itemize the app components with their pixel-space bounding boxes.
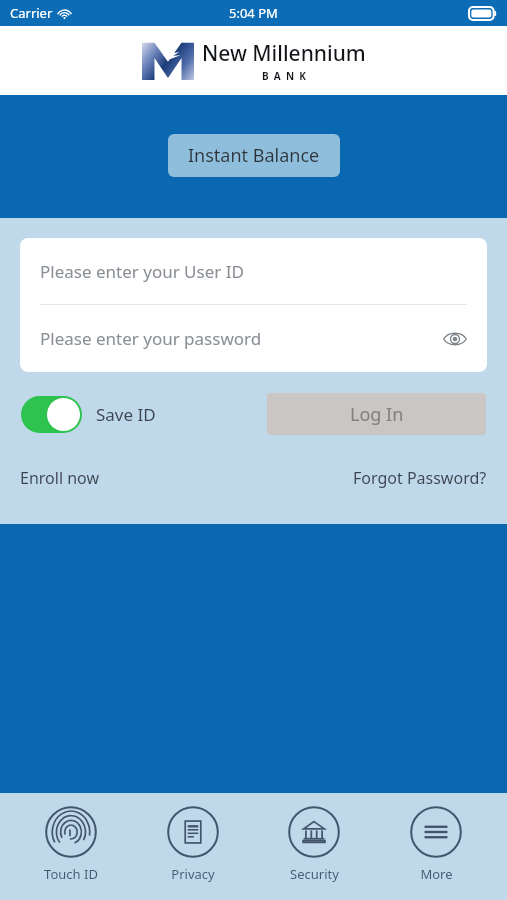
staticText: B A N K bbox=[262, 69, 306, 83]
staticText: Privacy bbox=[171, 865, 215, 883]
staticText: Carrier bbox=[10, 4, 53, 22]
button[interactable]: More bbox=[386, 793, 486, 900]
button[interactable]: Show password bbox=[437, 321, 473, 357]
staticText: Please enter your password bbox=[40, 327, 262, 350]
staticText: Forgot Password? bbox=[353, 467, 487, 489]
staticText: Log In bbox=[350, 402, 404, 427]
button[interactable]: Forgot Password? bbox=[353, 463, 487, 493]
button[interactable]: Security bbox=[264, 793, 364, 900]
staticText: Instant Balance bbox=[188, 143, 320, 168]
staticText: Security bbox=[290, 865, 339, 883]
button[interactable]: Save ID toggle, on bbox=[21, 396, 82, 433]
staticText: New Millennium bbox=[202, 39, 366, 68]
staticText: Please enter your User ID bbox=[40, 260, 244, 283]
staticText: Enroll now bbox=[20, 467, 99, 489]
staticText: Touch ID bbox=[44, 865, 98, 883]
button[interactable]: Privacy bbox=[143, 793, 243, 900]
button[interactable]: Touch ID bbox=[21, 793, 121, 900]
staticText: More bbox=[420, 865, 453, 883]
button[interactable]: Please enter your password bbox=[20, 305, 487, 372]
button[interactable]: Instant Balance bbox=[168, 134, 340, 177]
button[interactable]: Please enter your User ID bbox=[20, 238, 487, 304]
button[interactable]: Enroll now bbox=[20, 463, 99, 493]
staticText: 5:04 PM bbox=[229, 4, 278, 22]
button[interactable]: Log In bbox=[267, 393, 486, 435]
staticText: Save ID bbox=[96, 403, 156, 426]
